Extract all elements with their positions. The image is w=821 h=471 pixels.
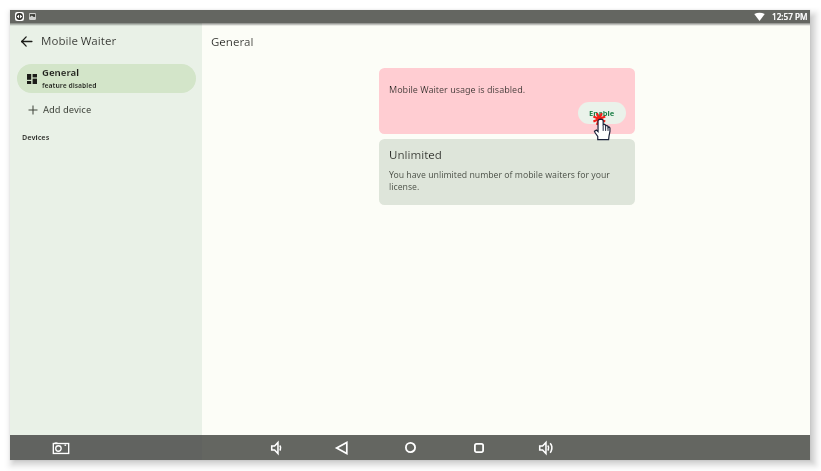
button[interactable]: Home xyxy=(398,435,423,460)
staticText: 12:57 PM xyxy=(772,11,808,22)
staticText: You have unlimited number of mobile wait… xyxy=(389,169,629,192)
button[interactable]: Back xyxy=(329,435,354,460)
staticText: Devices xyxy=(22,132,50,142)
button[interactable]: Enable xyxy=(578,102,626,124)
staticText: Mobile Waiter usage is disabled. xyxy=(389,83,526,95)
staticText: Enable xyxy=(589,108,615,118)
button[interactable]: Back xyxy=(16,31,36,51)
button[interactable]: Recent apps xyxy=(466,435,491,460)
button[interactable]: Volume down xyxy=(264,435,289,460)
staticText: General xyxy=(211,34,254,50)
staticText: feature disabled xyxy=(42,81,97,90)
staticText: Unlimited xyxy=(389,147,442,163)
staticText: General xyxy=(42,66,79,79)
staticText: Add device xyxy=(43,103,92,116)
button[interactable]: Screenshot xyxy=(48,435,73,460)
button[interactable]: Add device xyxy=(17,95,196,123)
button[interactable]: Volume up xyxy=(532,435,557,460)
button[interactable]: General xyxy=(17,64,196,93)
staticText: Mobile Waiter xyxy=(41,33,117,49)
